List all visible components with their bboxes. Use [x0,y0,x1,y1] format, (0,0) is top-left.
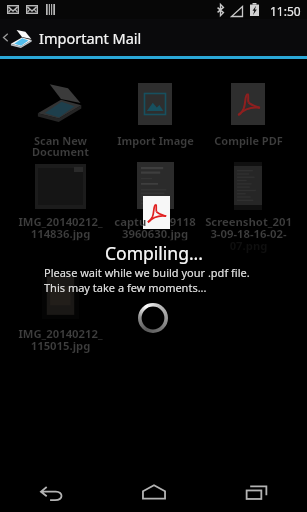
staticText: IMG_20140212_ 114836.jpg [18,214,103,242]
staticText: Compile PDF [214,133,283,148]
button[interactable] [108,83,202,125]
button[interactable]: Recent apps [205,472,307,512]
staticText: 11:50 [270,3,301,19]
staticText: IMG_20140212_ 115015.jpg [18,326,103,354]
staticText: Important Mail [39,28,142,48]
button[interactable] [13,164,107,209]
staticText: Import Image [117,133,194,148]
staticText: Compiling... [105,241,203,265]
staticText: Scan New Document [32,133,89,159]
button[interactable] [13,273,107,319]
button[interactable] [201,83,295,125]
button[interactable]: Home [103,472,205,512]
button[interactable] [108,162,202,230]
button[interactable]: Back [0,472,103,512]
staticText: Screenshot_201 3-09-18-16-02- 07.png [205,214,292,254]
staticText: Please wait while we build your .pdf fil… [44,265,250,280]
staticText: captu 9118 3960630.jpg [114,214,196,242]
button[interactable]: Navigate up [0,19,38,56]
staticText: This may take a few moments... [44,280,207,295]
button[interactable] [13,78,107,122]
button[interactable] [201,162,295,210]
